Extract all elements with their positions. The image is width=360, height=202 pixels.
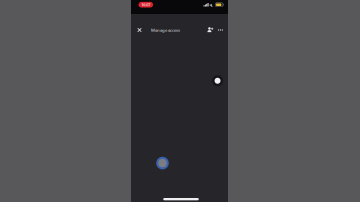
staticText: 16:07 bbox=[141, 2, 150, 7]
button[interactable]: Close bbox=[133, 26, 145, 34]
button[interactable]: More options bbox=[215, 26, 225, 34]
button[interactable]: Add people bbox=[205, 26, 215, 34]
staticText: Manage access bbox=[151, 27, 180, 33]
